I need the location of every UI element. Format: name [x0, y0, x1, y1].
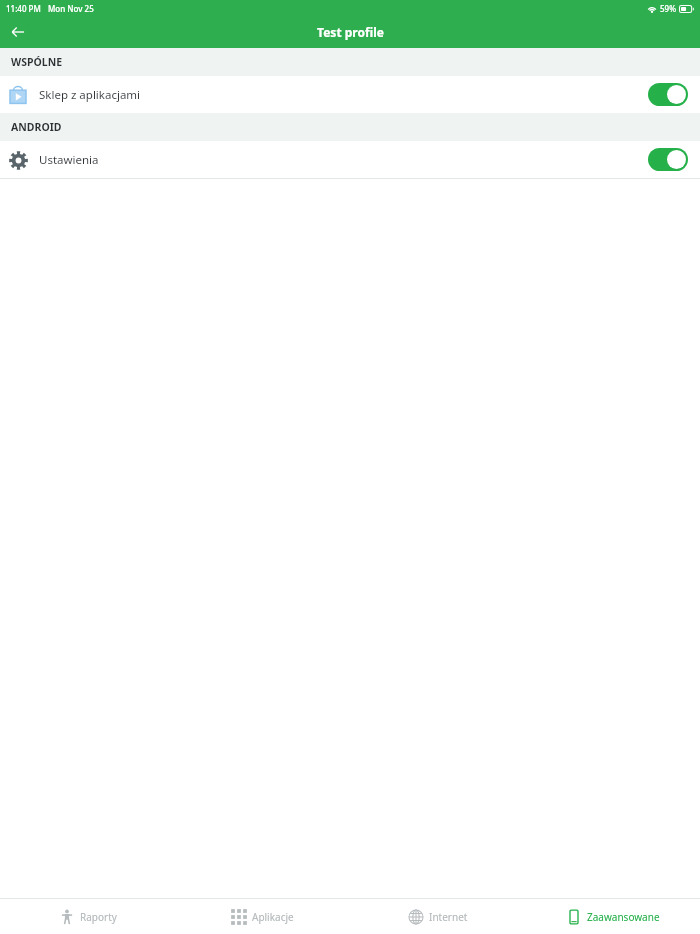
- button[interactable]: Toggle on: [648, 83, 688, 106]
- button[interactable]: Raporty: [0, 899, 175, 934]
- staticText: WSPÓLNE: [11, 55, 63, 69]
- button[interactable]: Aplikacje: [175, 899, 350, 934]
- staticText: 59%: [660, 3, 676, 14]
- button[interactable]: Toggle on: [648, 148, 688, 171]
- staticText: ANDROID: [11, 120, 62, 134]
- staticText: Aplikacje: [252, 910, 294, 924]
- button[interactable]: Zaawansowane: [525, 899, 700, 934]
- staticText: Raporty: [80, 910, 117, 924]
- button[interactable]: Ustawienia: [0, 141, 700, 178]
- staticText: Zaawansowane: [587, 910, 660, 924]
- staticText: 11:40 PM: [6, 3, 41, 14]
- staticText: Internet: [429, 910, 468, 924]
- button[interactable]: Internet: [350, 899, 525, 934]
- button[interactable]: Sklep z aplikacjami: [0, 76, 700, 113]
- staticText: Ustawienia: [39, 152, 99, 168]
- staticText: Mon Nov 25: [48, 3, 94, 14]
- button[interactable]: Back: [4, 18, 32, 46]
- staticText: Test profile: [317, 24, 384, 40]
- staticText: Sklep z aplikacjami: [39, 87, 141, 103]
